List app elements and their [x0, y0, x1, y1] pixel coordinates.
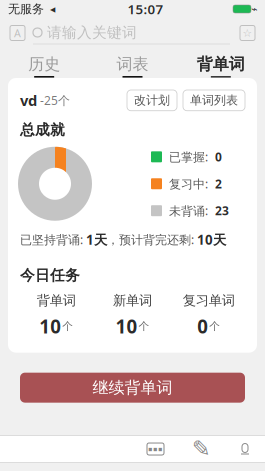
staticText: 复习中: — [169, 176, 208, 192]
staticText: ▪▪▪ — [148, 445, 163, 453]
staticText: 0 — [197, 314, 208, 339]
staticText: ，预计背完还剩: — [107, 232, 197, 247]
staticText: 10 — [39, 314, 61, 339]
button[interactable]: Voice input — [225, 443, 265, 454]
button[interactable]: Handwriting — [178, 436, 225, 462]
staticText: ◂ — [44, 3, 58, 15]
staticText: 单词列表 — [190, 93, 238, 108]
staticText: 背单词 — [37, 292, 76, 309]
staticText: ☆ — [242, 27, 252, 39]
staticText: 背单词 — [197, 54, 245, 74]
button[interactable]: 历史 — [0, 48, 88, 74]
staticText: 今日任务 — [20, 266, 80, 284]
staticText: 23 — [215, 203, 229, 219]
staticText: vd — [20, 91, 37, 110]
staticText: 新单词 — [113, 292, 152, 309]
staticText: ✎ — [192, 436, 211, 462]
button[interactable]: Keyboard — [133, 443, 178, 455]
staticText: 个 — [62, 320, 73, 333]
staticText: 10 — [115, 314, 137, 339]
staticText: 个 — [138, 320, 149, 333]
staticText: 改计划 — [134, 93, 170, 108]
button[interactable]: Favorites — [230, 25, 255, 40]
staticText: 无服务 — [8, 2, 44, 16]
staticText: A — [14, 26, 21, 40]
staticText: 已掌握: — [169, 149, 208, 165]
staticText: 15:07 — [127, 0, 163, 18]
button[interactable]: 继续背单词 — [20, 373, 245, 403]
staticText: 继续背单词 — [92, 378, 172, 397]
staticText: 0 — [215, 149, 222, 165]
button[interactable]: Scan — [10, 25, 33, 40]
staticText: 个 — [209, 320, 220, 333]
button[interactable]: 单词列表 — [183, 90, 245, 111]
staticText: 已坚持背诵: — [20, 232, 86, 247]
staticText: 请输入关键词 — [47, 23, 137, 41]
button[interactable]: 背单词 — [177, 48, 265, 74]
button[interactable]: 改计划 — [127, 90, 177, 111]
staticText: 复习单词 — [183, 292, 235, 309]
staticText: 总成就 — [20, 121, 65, 139]
staticText: -25个 — [37, 92, 70, 108]
staticText: 10天 — [197, 231, 226, 248]
staticText: 2 — [215, 176, 222, 192]
staticText: 历史 — [28, 54, 60, 74]
button[interactable]: 词表 — [88, 48, 177, 74]
staticText: 未背诵: — [169, 203, 208, 219]
staticText: 词表 — [116, 54, 148, 74]
staticText: 1天 — [86, 231, 107, 248]
staticText: ⌁ — [251, 3, 257, 15]
